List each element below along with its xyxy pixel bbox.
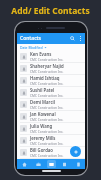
staticText: Ken Evans: [30, 51, 52, 57]
staticText: Julia Wang: [30, 123, 53, 129]
staticText: CMC Construction Inc.: [30, 94, 64, 98]
button[interactable]: Jeremy Mills: [17, 135, 85, 146]
staticText: CMC Construction Inc.: [30, 154, 64, 158]
button[interactable]: Bill Gordao: [17, 147, 85, 158]
staticText: Shaheryar Najid: [30, 63, 64, 69]
staticText: Hamid Ishtiaq: [30, 75, 60, 81]
button[interactable]: More options: [77, 35, 84, 42]
staticText: Jeremy Mills: [30, 135, 56, 141]
button[interactable]: Hamid Ishtiaq: [17, 75, 85, 86]
button[interactable]: Julia Wang: [17, 123, 85, 134]
staticText: CMC Construction Inc.: [30, 82, 64, 86]
button[interactable]: Date Modified: [17, 44, 85, 51]
button[interactable]: Search: [68, 34, 77, 43]
staticText: CMC Construction Inc.: [30, 58, 64, 62]
staticText: CMC Construction Inc.: [30, 142, 64, 146]
button[interactable]: Projects: [32, 159, 44, 169]
button[interactable]: Documents: [72, 159, 84, 169]
button[interactable]: Contacts: [45, 159, 57, 169]
button[interactable]: Shaheryar Najid: [17, 63, 85, 74]
button[interactable]: Sushil Patel: [17, 87, 85, 98]
staticText: CMC Construction Inc.: [30, 70, 64, 74]
staticText: Demi Marcil: [30, 99, 55, 105]
staticText: CMC Construction Inc.: [30, 130, 64, 134]
staticText: Sushil Patel: [30, 87, 55, 93]
button[interactable]: Home: [18, 159, 30, 169]
button[interactable]: Ken Evans: [17, 51, 85, 62]
staticText: CMC Construction Inc.: [30, 118, 64, 122]
staticText: Jan Kowenal: [30, 111, 56, 117]
button[interactable]: Jan Kowenal: [17, 111, 85, 122]
staticText: Contacts: [20, 35, 41, 42]
button[interactable]: Tasks: [58, 159, 70, 169]
staticText: Bill Gordao: [30, 147, 54, 153]
button[interactable]: Add contact: [70, 146, 81, 157]
staticText: Date Modified: [20, 45, 43, 50]
button[interactable]: Contacts: [20, 35, 41, 42]
staticText: Add/ Edit Contacts: [11, 5, 90, 17]
staticText: CMC Construction Inc.: [30, 106, 64, 110]
button[interactable]: Demi Marcil: [17, 99, 85, 110]
